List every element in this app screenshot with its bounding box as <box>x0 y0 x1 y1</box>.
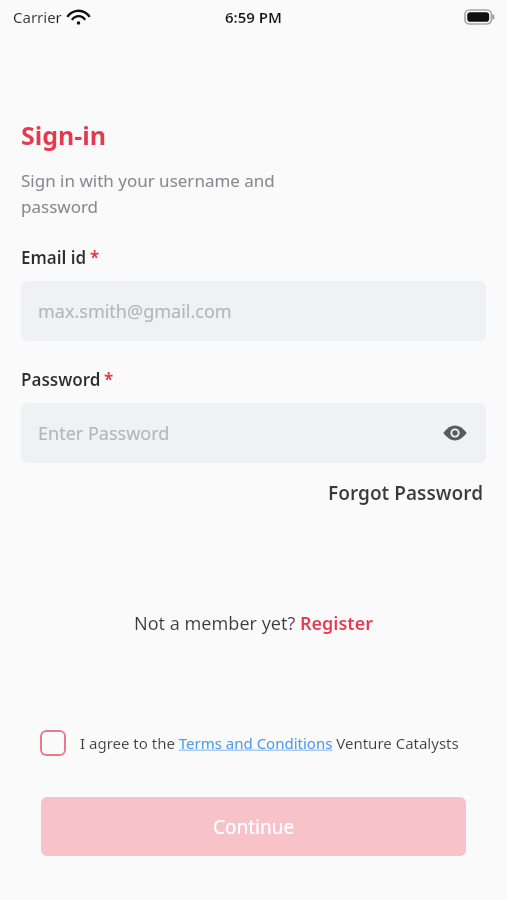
staticText: Register <box>300 611 373 636</box>
button[interactable]: max.smith@gmail.com <box>21 281 486 341</box>
staticText: 6:59 PM <box>225 7 282 27</box>
staticText: * <box>90 246 100 269</box>
button[interactable]: Not a member yet? <box>130 608 377 639</box>
staticText: Enter Password <box>38 421 170 446</box>
button[interactable]: Show password <box>438 416 472 450</box>
button[interactable]: Enter Password <box>21 403 486 463</box>
button[interactable]: Continue <box>41 797 466 856</box>
staticText: max.smith@gmail.com <box>38 299 232 324</box>
staticText: Email id <box>21 246 87 269</box>
staticText: Sign in with your username and password <box>21 169 275 218</box>
button[interactable]: Forgot Password <box>326 477 486 509</box>
staticText: * <box>104 368 114 391</box>
staticText: Carrier <box>13 7 62 27</box>
staticText: Forgot Password <box>328 480 484 506</box>
staticText: Continue <box>213 814 295 840</box>
staticText: Sign-in <box>21 118 107 152</box>
button[interactable]: I agree to the Terms and Conditions <box>40 730 66 756</box>
staticText: I agree to the Terms and Conditions Vent… <box>80 733 459 753</box>
staticText: Password <box>21 368 101 391</box>
staticText: Not a member yet? <box>134 611 300 636</box>
